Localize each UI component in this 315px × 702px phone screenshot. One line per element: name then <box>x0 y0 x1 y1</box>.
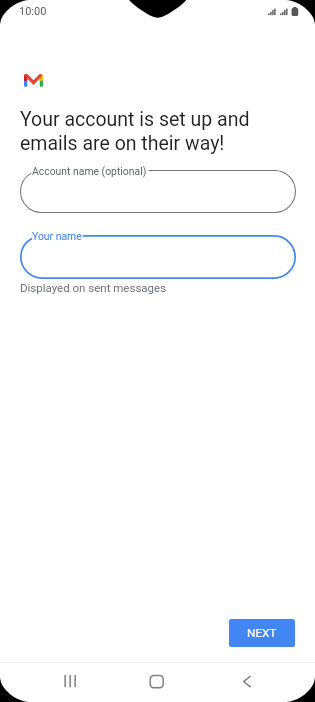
staticText: 10:00 <box>19 5 47 18</box>
button[interactable]: Back <box>229 664 265 700</box>
button[interactable] <box>20 170 296 213</box>
staticText: Account name (optional) <box>32 165 147 177</box>
staticText: Your account is set up and emails are on… <box>20 108 250 155</box>
staticText: NEXT <box>247 626 277 640</box>
button[interactable] <box>20 235 296 279</box>
staticText: Displayed on sent messages <box>20 281 167 294</box>
button[interactable]: Home <box>138 664 174 700</box>
staticText: Your name <box>32 230 82 242</box>
button[interactable]: Recent apps <box>52 664 88 700</box>
button[interactable]: NEXT <box>229 619 295 647</box>
